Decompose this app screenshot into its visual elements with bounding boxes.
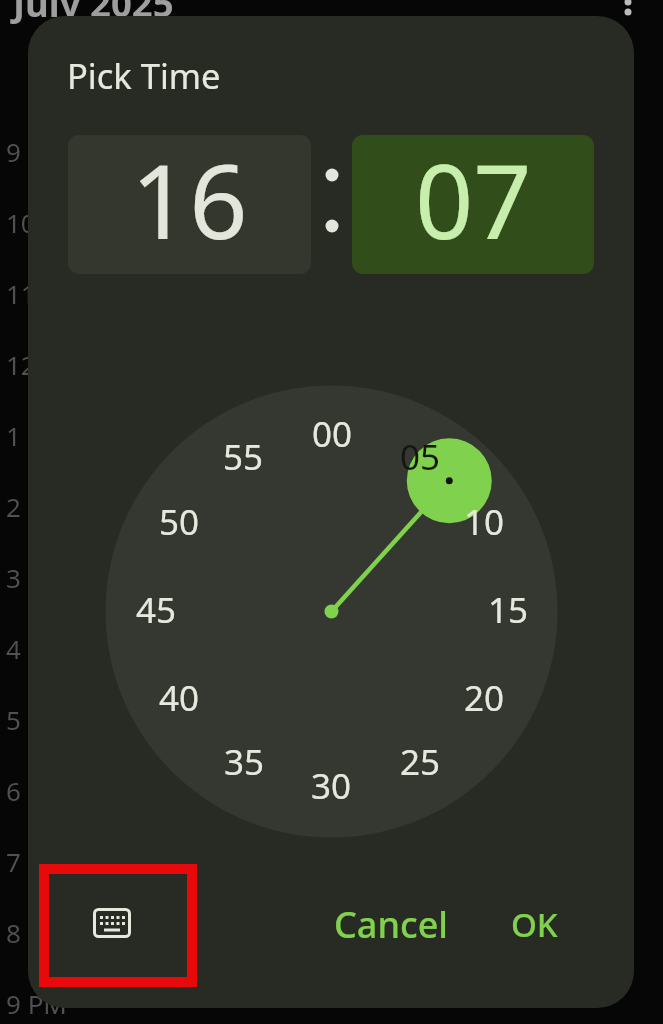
staticText: 25 [400, 738, 441, 786]
staticText: 00 [312, 410, 353, 458]
staticText: 10 [464, 498, 505, 546]
staticText: 55 [223, 433, 264, 481]
staticText: 9 PM [6, 986, 67, 1021]
button[interactable]: OK [491, 896, 577, 952]
staticText: 16 [131, 135, 248, 269]
staticText: 35 [224, 738, 265, 786]
staticText: 20 [464, 674, 505, 722]
staticText: 10 [6, 205, 36, 240]
staticText: 40 [159, 674, 200, 722]
staticText: Pick Time [67, 52, 221, 99]
button[interactable]: 07 [352, 135, 594, 274]
staticText: 2 [6, 489, 21, 524]
staticText: 12 [6, 347, 36, 382]
staticText: 45 [136, 586, 177, 634]
staticText: 5 [6, 702, 21, 737]
staticText: 50 [159, 498, 200, 546]
button[interactable] [84, 895, 140, 951]
staticText: 11 [6, 276, 36, 311]
staticText: 7 [6, 844, 21, 879]
staticText: 9 [6, 134, 21, 169]
staticText: 05 [400, 433, 441, 481]
staticText: 07 [415, 135, 532, 269]
staticText: 30 [311, 762, 352, 810]
button[interactable]: Cancel [307, 896, 475, 952]
staticText: 8 [6, 915, 21, 950]
staticText: 6 [6, 773, 21, 808]
staticText: 4 [6, 631, 21, 666]
button[interactable]: 16 [68, 135, 311, 274]
staticText: 1 [6, 418, 21, 453]
staticText: Cancel [334, 900, 449, 949]
staticText: 15 [488, 586, 529, 634]
staticText: July 2025 [13, 0, 174, 28]
staticText: 3 [6, 560, 21, 595]
staticText: OK [511, 902, 558, 947]
